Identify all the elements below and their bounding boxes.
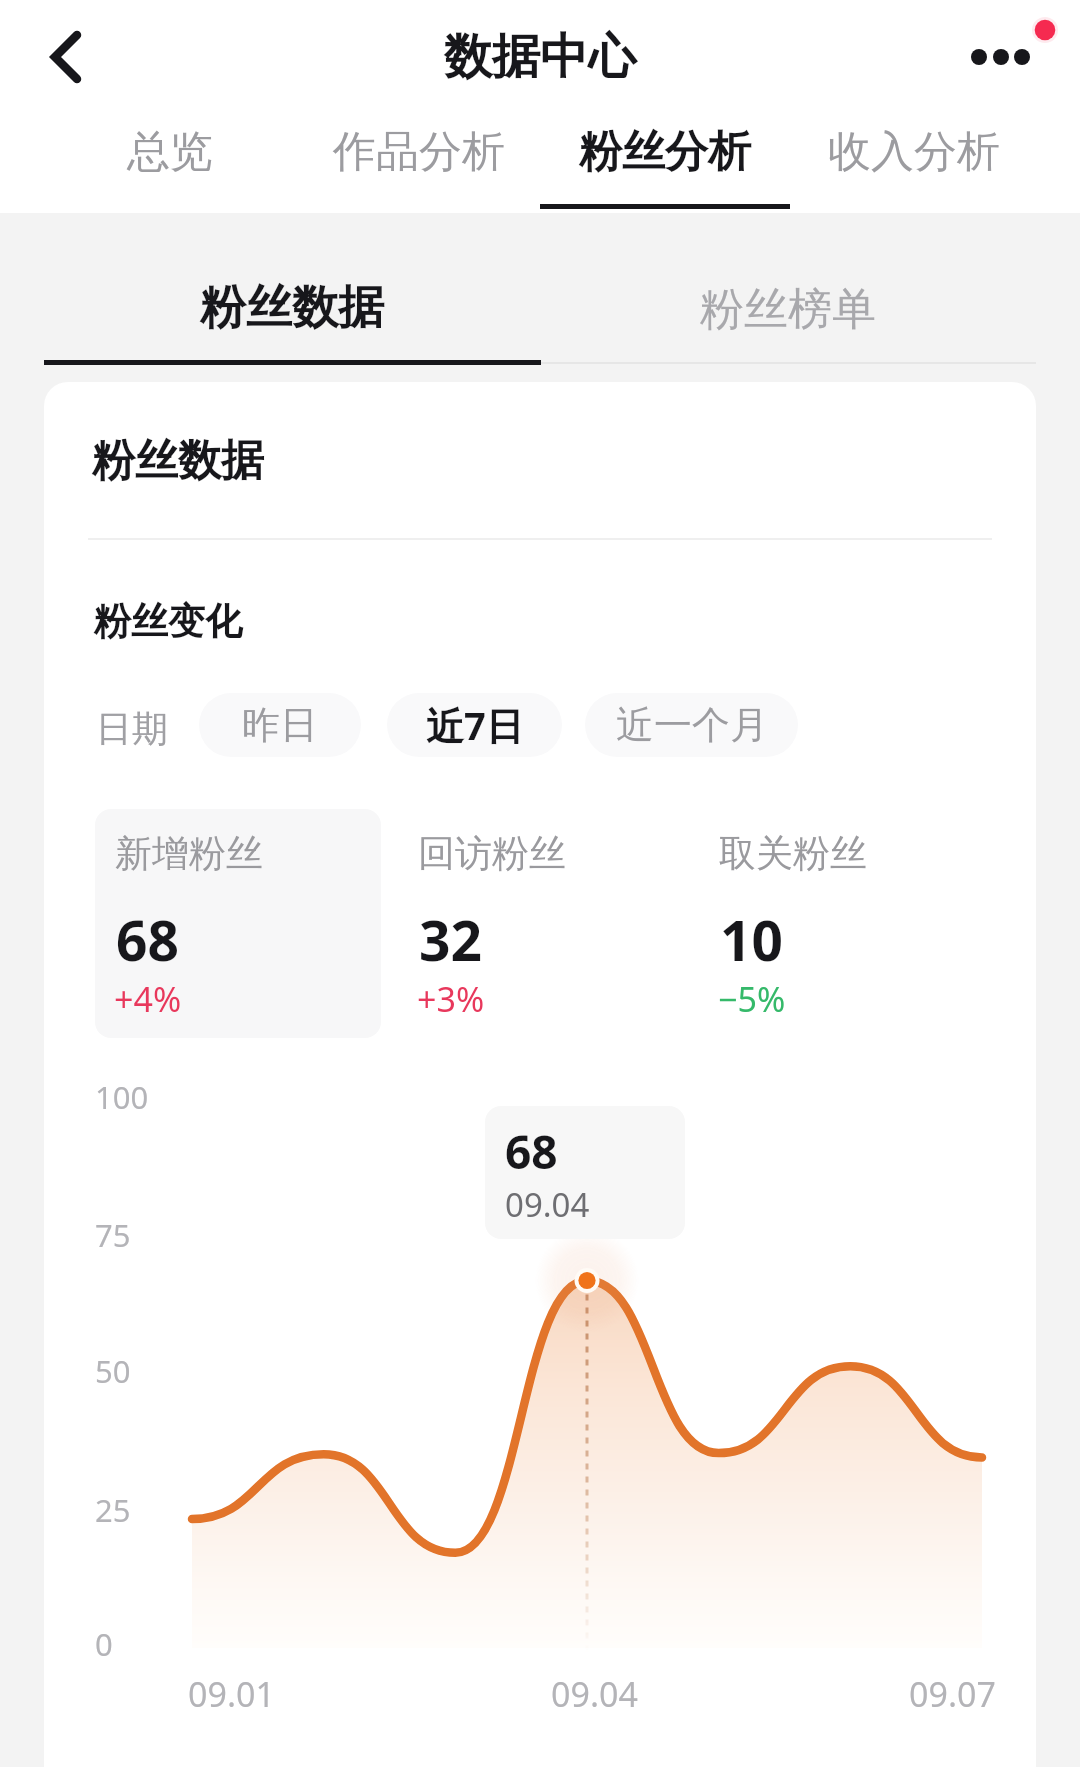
button[interactable]: 粉丝数据 (92, 213, 492, 353)
staticText: 09.01 (188, 1671, 275, 1717)
staticText: 回访粉丝 (418, 830, 566, 877)
staticText: 68 (505, 1120, 558, 1183)
button[interactable]: More options (950, 0, 1060, 110)
staticText: 25 (95, 1489, 131, 1531)
staticText: 粉丝变化 (94, 598, 242, 645)
button[interactable]: 新增粉丝 (95, 809, 381, 1038)
staticText: 粉丝数据 (200, 279, 384, 337)
staticText: 新增粉丝 (115, 830, 263, 877)
staticText: 粉丝榜单 (700, 282, 876, 337)
button[interactable]: 作品分析 (294, 112, 544, 213)
staticText: 10 (720, 902, 783, 977)
button[interactable]: 总览 (45, 112, 295, 213)
staticText: 09.07 (909, 1671, 996, 1717)
staticText: 0 (95, 1623, 113, 1665)
staticText: 近7日 (426, 699, 524, 751)
button[interactable]: Back (20, 8, 112, 100)
button[interactable]: 粉丝榜单 (588, 213, 988, 353)
staticText: 总览 (127, 125, 213, 179)
staticText: 取关粉丝 (719, 830, 867, 877)
button[interactable]: 收入分析 (789, 112, 1039, 213)
staticText: 09.04 (505, 1182, 590, 1227)
staticText: +4% (114, 976, 182, 1022)
button[interactable]: 取关粉丝 (699, 809, 985, 1038)
button[interactable]: 昨日 (199, 693, 361, 757)
staticText: 日期 (96, 706, 168, 751)
staticText: +3% (417, 976, 485, 1022)
button[interactable]: 近7日 (387, 693, 562, 757)
staticText: −5% (718, 976, 786, 1022)
staticText: 09.04 (551, 1671, 638, 1717)
staticText: 昨日 (242, 701, 318, 749)
staticText: 收入分析 (828, 125, 1000, 179)
button[interactable]: 回访粉丝 (398, 809, 684, 1038)
staticText: 粉丝分析 (579, 125, 751, 179)
staticText: 100 (95, 1076, 149, 1118)
button[interactable]: 近一个月 (585, 693, 798, 757)
staticText: 32 (419, 902, 482, 977)
staticText: 68 (116, 902, 179, 977)
staticText: 50 (95, 1350, 131, 1392)
staticText: 75 (95, 1214, 131, 1256)
staticText: 粉丝数据 (92, 434, 264, 488)
button[interactable]: 粉丝分析 (540, 112, 790, 213)
staticText: 作品分析 (333, 125, 505, 179)
staticText: 近一个月 (616, 701, 768, 749)
staticText: 数据中心 (444, 27, 636, 87)
